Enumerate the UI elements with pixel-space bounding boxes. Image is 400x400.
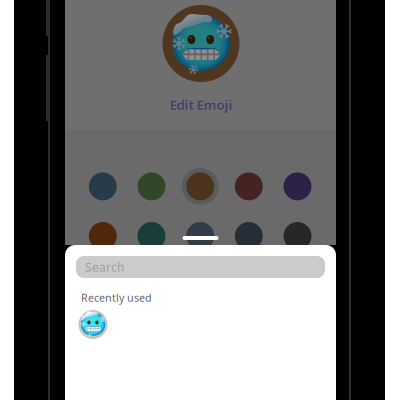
button[interactable]: Background colour <box>131 216 171 256</box>
button[interactable]: Background colour <box>83 166 123 206</box>
staticText: Edit Emoji <box>169 96 232 113</box>
button[interactable]: Background colour <box>229 166 269 206</box>
button[interactable]: Background colour <box>229 216 269 256</box>
button[interactable]: Background colour <box>277 216 317 256</box>
button[interactable]: Background colour <box>180 166 220 206</box>
button[interactable]: Edit Emoji <box>151 95 251 113</box>
button[interactable]: Cold face emoji <box>78 310 107 339</box>
button[interactable]: Search <box>76 256 325 278</box>
staticText: 🥶 <box>168 13 234 74</box>
button[interactable]: Background colour <box>277 166 317 206</box>
button[interactable]: Background colour <box>131 166 171 206</box>
staticText: Recently used <box>81 290 152 305</box>
button[interactable]: Background colour <box>83 216 123 256</box>
staticText: 🥶 <box>79 312 107 337</box>
button[interactable]: Background colour <box>180 216 220 256</box>
staticText: Search <box>85 259 124 275</box>
